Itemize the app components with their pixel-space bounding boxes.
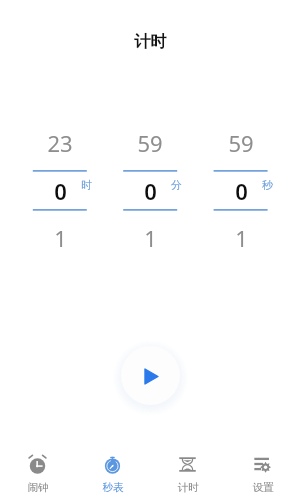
button[interactable]: 秒表 xyxy=(75,444,150,500)
button[interactable]: Start timer xyxy=(121,346,180,405)
button[interactable] xyxy=(123,171,177,210)
staticText: 时 xyxy=(81,178,92,192)
staticText: 0 xyxy=(54,176,67,206)
staticText: 0 xyxy=(144,176,157,206)
staticText: 闹钟 xyxy=(27,481,49,494)
button[interactable]: 计时 xyxy=(134,31,167,51)
staticText: 1 xyxy=(235,223,248,253)
button[interactable]: 计时 xyxy=(150,444,225,500)
button[interactable]: 闹钟 xyxy=(0,444,75,500)
button[interactable]: 设置 xyxy=(225,444,300,500)
staticText: 1 xyxy=(144,223,157,253)
staticText: 59 xyxy=(137,128,163,158)
staticText: 设置 xyxy=(252,481,274,494)
staticText: 0 xyxy=(235,176,248,206)
staticText: 59 xyxy=(228,128,254,158)
staticText: 分 xyxy=(171,178,182,192)
staticText: 计时 xyxy=(134,31,167,51)
staticText: 秒 xyxy=(262,178,273,192)
staticText: 1 xyxy=(54,223,67,253)
button[interactable] xyxy=(214,171,268,210)
staticText: 计时 xyxy=(177,481,199,494)
staticText: 秒表 xyxy=(102,481,124,494)
button[interactable] xyxy=(33,171,87,210)
staticText: 23 xyxy=(47,128,73,158)
